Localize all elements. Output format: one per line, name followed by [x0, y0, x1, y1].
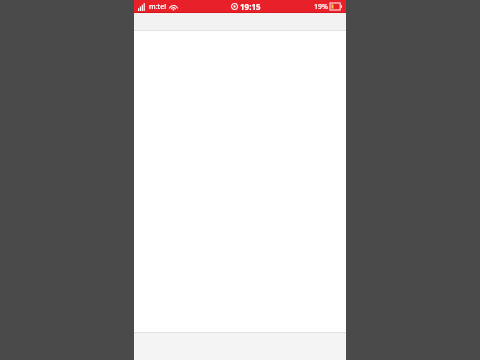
staticText: m:tel: [149, 2, 167, 12]
staticText: 19%: [314, 2, 328, 12]
staticText: 19:15: [240, 1, 261, 12]
